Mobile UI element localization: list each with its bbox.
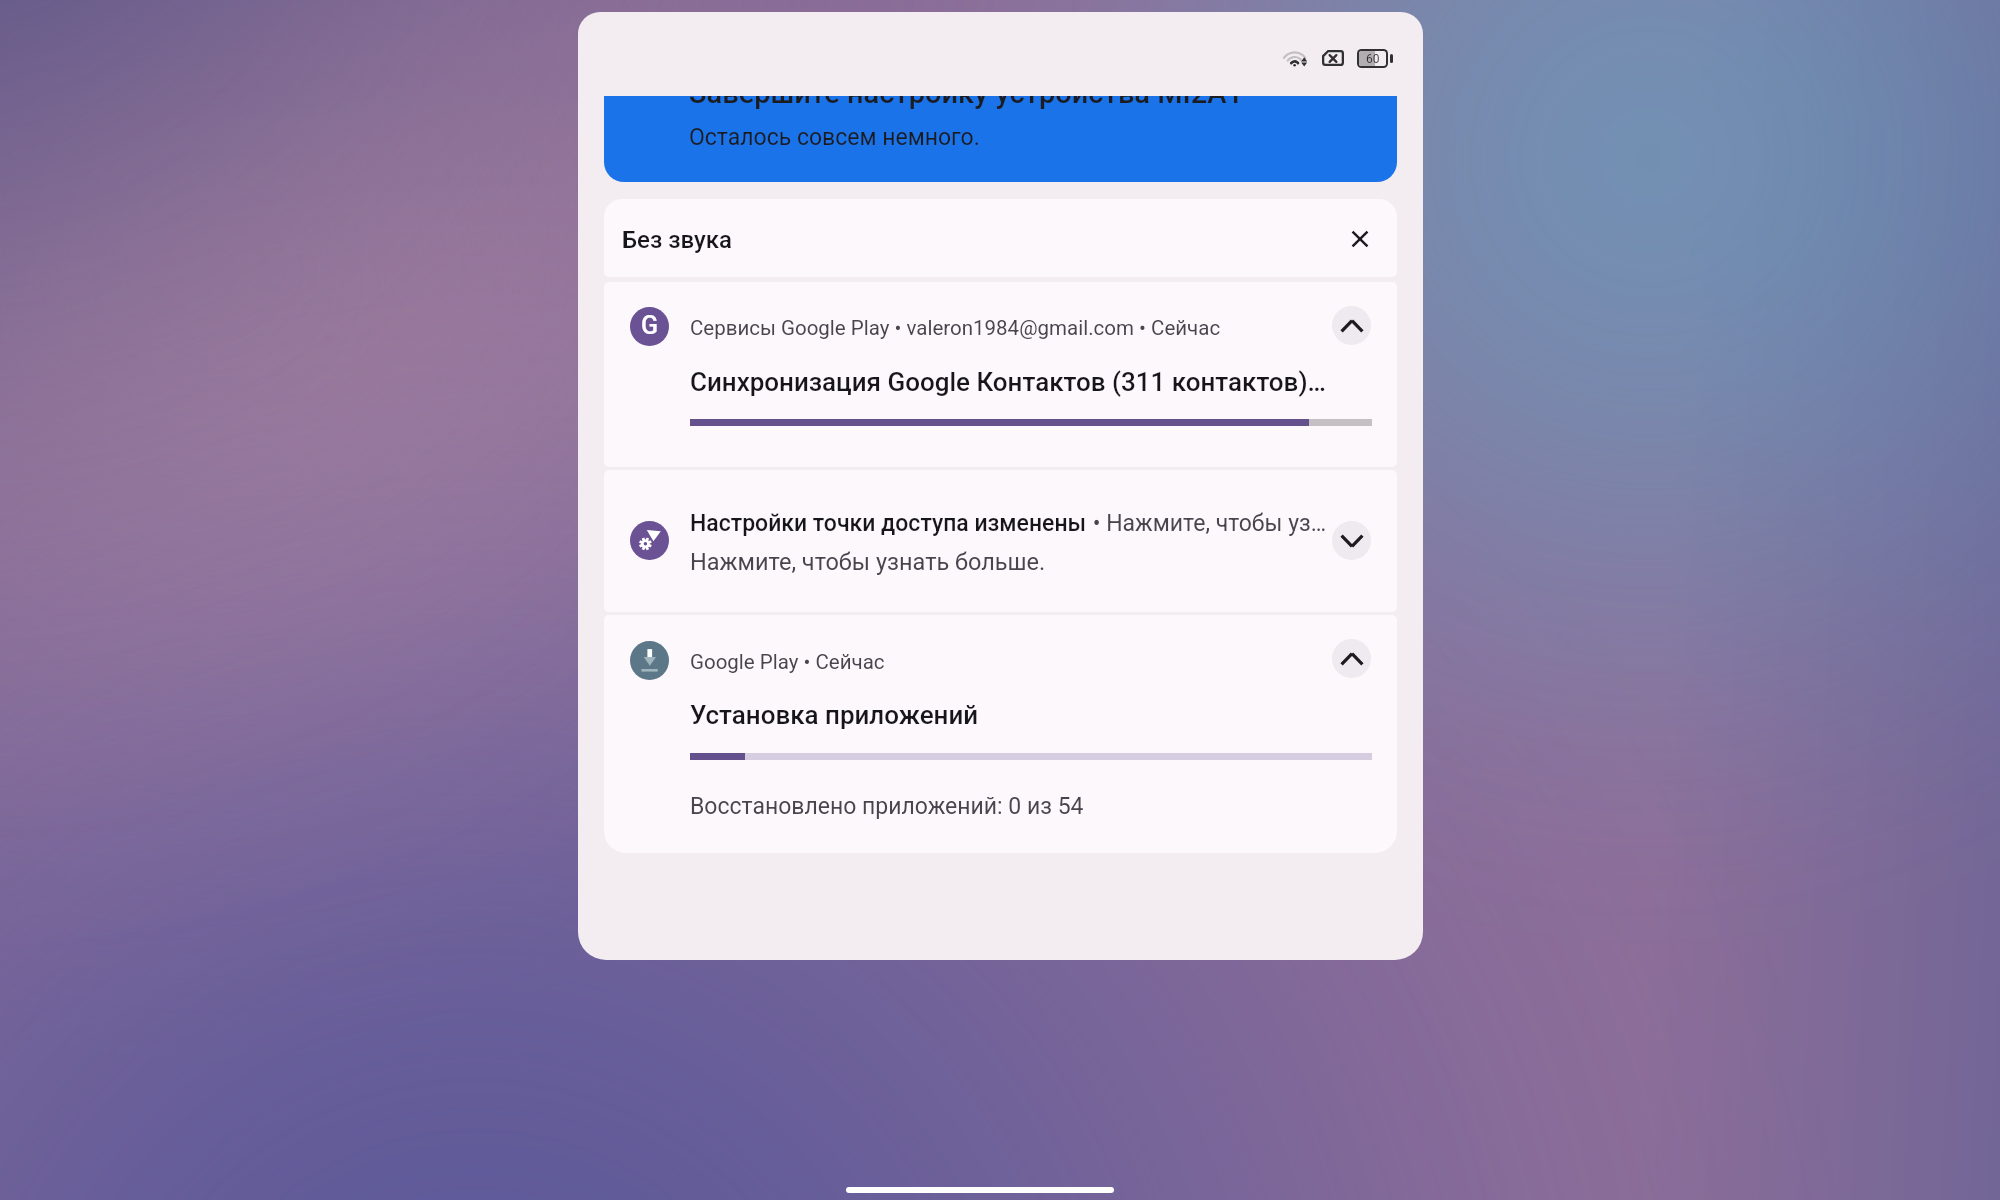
button[interactable]: Завершите настройку устройства MI2A1 [604,96,1397,182]
staticText: Без звука [622,226,732,254]
staticText: Восстановлено приложений: 0 из 54 [690,793,1084,820]
button[interactable]: Свернуть уведомление [1332,639,1371,678]
staticText: Google Play • Сейчас [690,650,885,674]
staticText: Сервисы Google Play • valeron1984@gmail.… [690,316,1221,340]
staticText: Завершите настройку устройства MI2A1 [689,96,1243,110]
button[interactable]: G [604,282,1397,467]
staticText: 60 [1366,52,1380,66]
staticText: G [641,311,659,340]
staticText: Синхронизация Google Контактов (311 конт… [690,367,1326,397]
button[interactable]: Google Play • Сейчас [604,615,1397,853]
staticText: Установка приложений [690,700,979,730]
staticText: Нажмите, чтобы узнать больше. [690,548,1046,576]
button[interactable]: Свернуть уведомление [1332,306,1371,345]
staticText: Осталось совсем немного. [689,124,980,151]
staticText: • Нажмите, чтобы уз… [1087,510,1327,537]
button[interactable]: Настройки точки доступа изменены [604,470,1397,612]
staticText: Настройки точки доступа изменены [690,510,1087,537]
button[interactable]: Закрыть [1336,215,1384,263]
button[interactable]: Развернуть уведомление [1332,521,1371,560]
